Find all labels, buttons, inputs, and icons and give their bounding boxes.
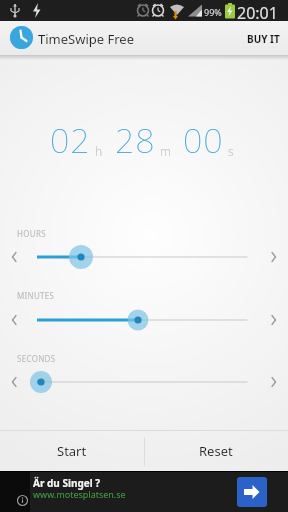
staticText: Start xyxy=(57,442,87,460)
staticText: h xyxy=(95,143,103,159)
staticText: 99% xyxy=(204,6,222,18)
button[interactable]: Reset xyxy=(144,431,288,471)
staticText: HOURS xyxy=(17,228,46,239)
staticText: 00 xyxy=(183,117,224,163)
button[interactable]: Är du Singel ? xyxy=(0,471,288,512)
button[interactable]: BUY IT xyxy=(238,21,288,56)
staticText: 20:01 xyxy=(237,2,278,23)
button[interactable] xyxy=(237,477,267,507)
staticText: 02 xyxy=(50,117,91,163)
staticText: Reset xyxy=(199,442,233,460)
button[interactable] xyxy=(0,304,288,336)
staticText: m xyxy=(160,143,171,159)
staticText: 28 xyxy=(115,117,156,163)
staticText: www.motesplatsen.se xyxy=(33,488,126,500)
staticText: BUY IT xyxy=(247,32,280,46)
staticText: MINUTES xyxy=(17,290,55,301)
staticText: TimeSwipe Free xyxy=(38,30,135,48)
staticText: s xyxy=(228,143,234,159)
staticText: Är du Singel ? xyxy=(33,476,101,490)
button[interactable]: Start xyxy=(0,431,144,471)
staticText: SECONDS xyxy=(17,353,56,364)
button[interactable] xyxy=(0,241,288,273)
button[interactable] xyxy=(0,366,288,398)
